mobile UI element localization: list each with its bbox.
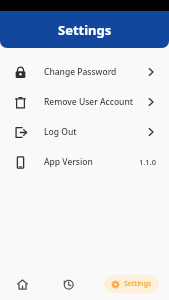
staticText: Change Password	[44, 66, 117, 78]
button[interactable]: Log Out	[0, 117, 169, 147]
button[interactable]: History	[58, 274, 78, 294]
button[interactable]: Remove User Account	[0, 87, 169, 117]
staticText: Settings	[58, 21, 112, 39]
staticText: 1.1.0	[139, 157, 156, 167]
button[interactable]: Settings	[104, 275, 159, 293]
staticText: Log Out	[44, 126, 77, 138]
staticText: Remove User Account	[44, 96, 134, 108]
staticText: Settings	[124, 279, 152, 289]
button[interactable]: Change Password	[0, 57, 169, 87]
button[interactable]: Home	[12, 274, 32, 294]
staticText: App Version	[44, 156, 93, 168]
button[interactable]: App Version	[0, 147, 169, 177]
